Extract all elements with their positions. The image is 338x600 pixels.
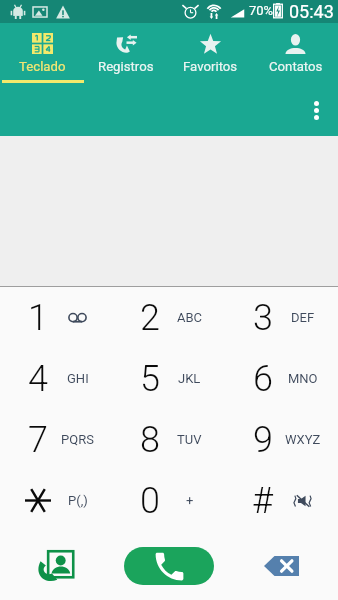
button[interactable]: 2 bbox=[112, 287, 225, 348]
staticText: TUV bbox=[177, 432, 202, 447]
button[interactable]: P(,) bbox=[0, 470, 112, 531]
button[interactable]: 6 bbox=[225, 348, 338, 409]
button[interactable]: More options bbox=[294, 88, 338, 132]
staticText: DEF bbox=[291, 310, 315, 325]
staticText: Contatos bbox=[269, 59, 323, 74]
staticText: 9 bbox=[253, 419, 273, 461]
button[interactable]: 9 bbox=[225, 409, 338, 470]
staticText: 70% bbox=[249, 3, 274, 18]
staticText: P(,) bbox=[68, 493, 88, 508]
button[interactable]: 0 bbox=[112, 470, 225, 531]
button[interactable]: Call bbox=[124, 547, 214, 585]
button[interactable]: 4 bbox=[0, 348, 112, 409]
staticText: MNO bbox=[288, 371, 318, 386]
staticText: 2 bbox=[140, 297, 160, 339]
staticText: + bbox=[186, 493, 194, 508]
button[interactable]: 1 bbox=[0, 287, 112, 348]
staticText: Registros bbox=[98, 59, 154, 74]
button[interactable]: Contatos bbox=[253, 26, 338, 80]
staticText: # bbox=[252, 480, 273, 522]
staticText: 5 bbox=[140, 358, 160, 400]
button[interactable]: Teclado bbox=[0, 26, 84, 80]
staticText: 3 bbox=[253, 297, 273, 339]
button[interactable]: Add contact bbox=[0, 531, 112, 600]
staticText: 0 bbox=[140, 480, 160, 522]
staticText: 8 bbox=[140, 419, 160, 461]
staticText: ABC bbox=[177, 310, 203, 325]
button[interactable]: 3 bbox=[225, 287, 338, 348]
staticText: 7 bbox=[28, 419, 48, 461]
staticText: 6 bbox=[253, 358, 273, 400]
staticText: Favoritos bbox=[183, 59, 238, 74]
staticText: Teclado bbox=[19, 59, 66, 74]
button[interactable]: 5 bbox=[112, 348, 225, 409]
button[interactable]: 7 bbox=[0, 409, 112, 470]
staticText: GHI bbox=[67, 371, 89, 386]
button[interactable]: Backspace bbox=[225, 531, 338, 600]
staticText: JKL bbox=[178, 371, 201, 386]
button[interactable]: Registros bbox=[84, 26, 168, 80]
staticText: WXYZ bbox=[285, 432, 321, 447]
button[interactable]: 8 bbox=[112, 409, 225, 470]
button[interactable]: # bbox=[225, 470, 338, 531]
staticText: 05:43 bbox=[289, 1, 334, 22]
staticText: 4 bbox=[28, 358, 48, 400]
staticText: 1 bbox=[28, 297, 48, 339]
staticText: PQRS bbox=[61, 432, 94, 447]
button[interactable]: Favoritos bbox=[168, 26, 253, 80]
